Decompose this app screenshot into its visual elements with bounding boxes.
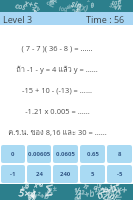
staticText: -1.21 x 0.005 = ......: [25, 106, 90, 116]
staticText: ถ้า -1 - y = 4 แล้ว y = ......: [16, 63, 98, 75]
button[interactable]: -5: [107, 165, 132, 183]
button[interactable]: 0.65: [80, 145, 105, 163]
staticText: -5: [117, 170, 123, 178]
staticText: 0.65: [87, 150, 99, 158]
button[interactable]: 8: [107, 145, 132, 163]
staticText: Level 3: [3, 13, 33, 25]
staticText: 8: [118, 150, 122, 158]
button[interactable]: 24: [27, 165, 51, 183]
staticText: ค.ร.น. ของ 8,16 และ 30 = ......: [8, 126, 107, 138]
button[interactable]: -1: [1, 165, 25, 183]
staticText: -1: [10, 170, 16, 178]
staticText: 240: [60, 170, 71, 178]
button[interactable]: 0.00605: [27, 145, 51, 163]
staticText: 0.0605: [56, 150, 75, 158]
staticText: 24: [36, 170, 43, 178]
staticText: 5: [91, 170, 95, 178]
staticText: ( 7 - 7 )( 36 - 8 ) = ......: [21, 43, 93, 53]
staticText: 0.00605: [28, 150, 51, 158]
staticText: Time : 56: [86, 13, 125, 25]
button[interactable]: 0: [1, 145, 25, 163]
staticText: 0: [11, 150, 15, 158]
staticText: -15 + 10 - (-13) = ......: [22, 85, 92, 95]
button[interactable]: 240: [53, 165, 78, 183]
button[interactable]: 5: [80, 165, 105, 183]
button[interactable]: 0.0605: [53, 145, 78, 163]
